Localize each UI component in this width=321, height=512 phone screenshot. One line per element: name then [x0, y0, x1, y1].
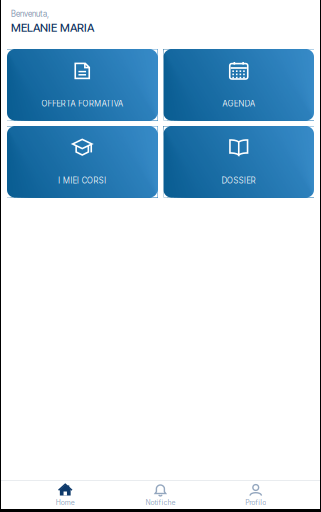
staticText: I MIEI CORSI	[58, 176, 106, 185]
staticText: MELANIE MARIA	[11, 21, 94, 34]
staticText: Benvenuta,	[11, 9, 49, 19]
button[interactable]: Home	[35, 483, 95, 507]
button[interactable]: I MIEI CORSI	[7, 126, 157, 197]
staticText: Profilo	[245, 498, 266, 507]
button[interactable]: OFFERTA FORMATIVA	[7, 49, 157, 120]
staticText: Home	[56, 498, 75, 507]
staticText: Notifiche	[145, 498, 175, 507]
button[interactable]: DOSSIER	[163, 126, 314, 197]
staticText: OFFERTA FORMATIVA	[41, 99, 123, 108]
button[interactable]: Notifiche	[130, 483, 190, 507]
staticText: DOSSIER	[222, 176, 256, 185]
staticText: AGENDA	[222, 99, 255, 108]
button[interactable]: Profilo	[226, 483, 286, 507]
button[interactable]: AGENDA	[163, 49, 314, 120]
